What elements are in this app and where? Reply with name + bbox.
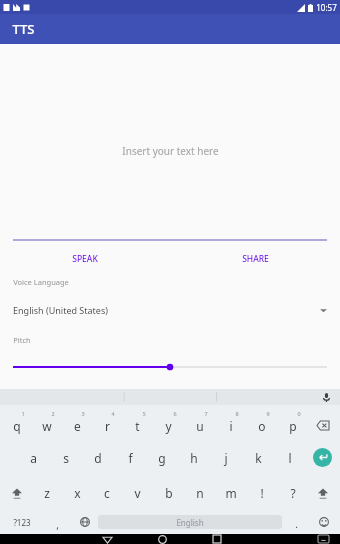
- staticText: q: [13, 418, 21, 434]
- staticText: 6: [173, 410, 177, 417]
- button[interactable]: Backspace: [308, 405, 338, 440]
- staticText: 10:57: [316, 2, 337, 13]
- button[interactable]: 0: [277, 405, 308, 440]
- staticText: g: [158, 450, 166, 466]
- staticText: Insert your text here: [122, 144, 219, 158]
- staticText: f: [128, 450, 133, 466]
- button[interactable]: Shift: [308, 475, 338, 510]
- button[interactable]: !: [246, 475, 277, 510]
- staticText: j: [224, 450, 228, 466]
- staticText: u: [196, 418, 204, 434]
- staticText: s: [63, 450, 69, 466]
- button[interactable]: [0, 359, 340, 375]
- button[interactable]: 3: [62, 405, 92, 440]
- staticText: d: [94, 450, 102, 466]
- button[interactable]: ?123: [2, 510, 42, 534]
- button[interactable]: Emoji: [310, 510, 338, 534]
- button[interactable]: ,: [42, 510, 72, 534]
- button[interactable]: 5: [122, 405, 153, 440]
- staticText: a: [30, 450, 37, 466]
- staticText: ?: [290, 485, 296, 501]
- staticText: b: [165, 485, 173, 501]
- button[interactable]: 2: [32, 405, 62, 440]
- button[interactable]: m: [215, 475, 246, 510]
- staticText: e: [74, 418, 81, 434]
- staticText: 7: [204, 410, 208, 417]
- staticText: 9: [266, 410, 270, 417]
- button[interactable]: g: [146, 440, 178, 475]
- staticText: SHARE: [242, 253, 269, 265]
- staticText: k: [255, 450, 262, 466]
- staticText: 1: [21, 410, 25, 417]
- staticText: o: [258, 418, 266, 434]
- button[interactable]: 8: [215, 405, 246, 440]
- staticText: 4: [111, 410, 115, 417]
- button[interactable]: h: [178, 440, 210, 475]
- staticText: SPEAK: [72, 253, 98, 265]
- button[interactable]: .: [282, 510, 310, 534]
- staticText: x: [74, 485, 81, 501]
- staticText: i: [229, 418, 233, 434]
- staticText: English (United States): [13, 304, 108, 316]
- staticText: 5: [142, 410, 146, 417]
- button[interactable]: English (United States): [0, 301, 340, 319]
- button[interactable]: n: [184, 475, 215, 510]
- button[interactable]: ?: [277, 475, 308, 510]
- button[interactable]: c: [92, 475, 122, 510]
- staticText: ?123: [13, 517, 31, 528]
- staticText: TTS: [12, 20, 35, 38]
- button[interactable]: Change language: [72, 510, 98, 534]
- staticText: English: [176, 517, 204, 528]
- button[interactable]: Enter: [306, 440, 338, 475]
- staticText: ,: [56, 518, 59, 532]
- staticText: w: [42, 418, 52, 434]
- button[interactable]: 4: [92, 405, 122, 440]
- button[interactable]: f: [114, 440, 146, 475]
- button[interactable]: x: [62, 475, 92, 510]
- button[interactable]: z: [32, 475, 62, 510]
- button[interactable]: Home: [150, 534, 174, 544]
- staticText: Voice Language: [13, 277, 69, 287]
- staticText: 0: [297, 410, 301, 417]
- staticText: v: [134, 485, 141, 501]
- button[interactable]: 9: [246, 405, 277, 440]
- staticText: Pitch: [13, 335, 31, 345]
- staticText: y: [165, 418, 172, 434]
- button[interactable]: l: [274, 440, 306, 475]
- button[interactable]: a: [17, 440, 50, 475]
- staticText: p: [289, 418, 297, 434]
- button[interactable]: Voice input: [320, 391, 332, 403]
- button[interactable]: s: [50, 440, 82, 475]
- staticText: !: [260, 485, 264, 501]
- button[interactable]: k: [242, 440, 274, 475]
- staticText: z: [44, 485, 50, 501]
- staticText: c: [104, 485, 110, 501]
- button[interactable]: SHARE: [170, 250, 340, 268]
- staticText: t: [135, 418, 140, 434]
- button[interactable]: Back: [95, 534, 119, 544]
- button[interactable]: 1: [2, 405, 32, 440]
- button[interactable]: English: [98, 515, 282, 529]
- staticText: h: [190, 450, 198, 466]
- staticText: .: [295, 517, 298, 531]
- button[interactable]: Recent apps: [205, 534, 229, 544]
- staticText: m: [225, 485, 237, 501]
- button[interactable]: b: [153, 475, 184, 510]
- button[interactable]: v: [122, 475, 153, 510]
- button[interactable]: Shift: [2, 475, 32, 510]
- button[interactable]: 6: [153, 405, 184, 440]
- staticText: l: [288, 450, 292, 466]
- button[interactable]: j: [210, 440, 242, 475]
- staticText: 3: [81, 410, 85, 417]
- button[interactable]: SPEAK: [0, 250, 170, 268]
- staticText: 8: [235, 410, 239, 417]
- button[interactable]: 7: [184, 405, 215, 440]
- staticText: r: [105, 418, 110, 434]
- button[interactable]: Hide keyboard: [311, 534, 335, 544]
- staticText: 2: [51, 410, 55, 417]
- staticText: n: [196, 485, 204, 501]
- button[interactable]: d: [82, 440, 114, 475]
